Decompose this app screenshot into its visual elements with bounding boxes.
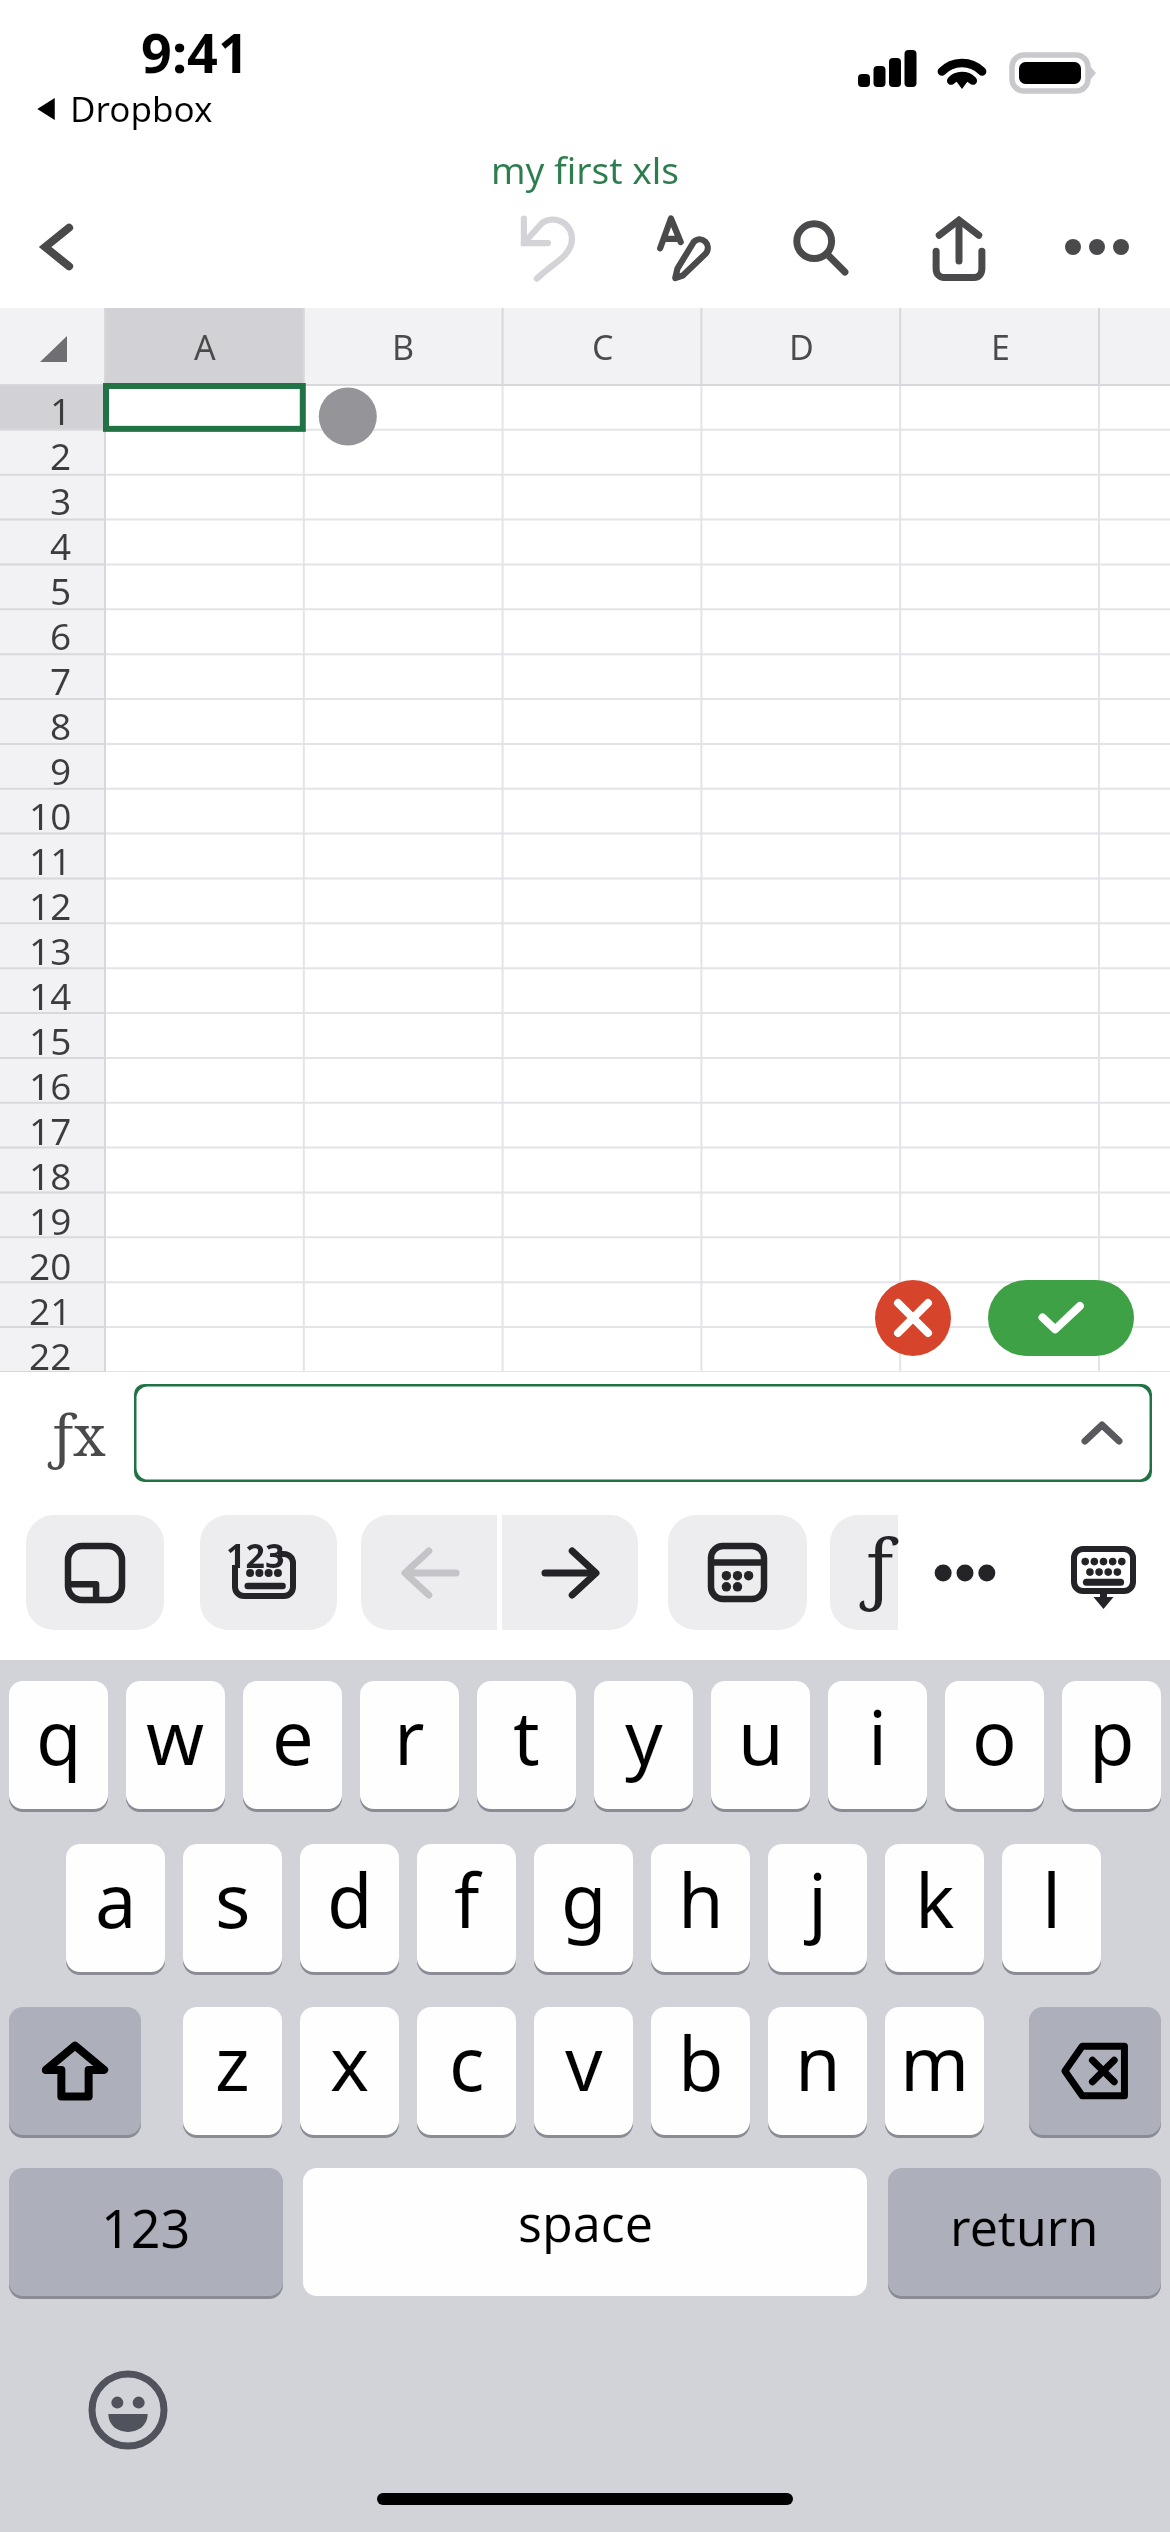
button[interactable]: E (901, 308, 1100, 385)
staticText: 9 (50, 745, 72, 790)
button[interactable]: 7 (0, 655, 105, 700)
button[interactable]: 3 (0, 475, 105, 520)
staticText: f (454, 1849, 480, 1950)
button[interactable]: Back (19, 207, 99, 287)
button[interactable] (134, 1384, 1152, 1482)
button[interactable]: a (66, 1844, 165, 1972)
button[interactable]: l (1002, 1844, 1101, 1972)
button[interactable]: 19 (0, 1195, 105, 1240)
button[interactable]: q (9, 1681, 108, 1809)
button[interactable]: 10 (0, 790, 105, 835)
button[interactable]: m (885, 2007, 984, 2135)
button[interactable]: 17 (0, 1105, 105, 1150)
button[interactable]: Numbers (9, 2168, 283, 2296)
staticText: o (972, 1686, 1017, 1787)
button[interactable]: n (768, 2007, 867, 2135)
button[interactable]: Previous cell (361, 1515, 499, 1630)
staticText: 19 (29, 1195, 72, 1240)
button[interactable]: 13 (0, 925, 105, 970)
staticText: n (795, 2012, 841, 2113)
button[interactable]: c (417, 2007, 516, 2135)
button[interactable]: f (417, 1844, 516, 1972)
button[interactable]: 21 (0, 1285, 105, 1330)
button[interactable]: Functions (830, 1515, 898, 1630)
button[interactable]: space (303, 2168, 867, 2296)
button[interactable]: 18 (0, 1150, 105, 1195)
button[interactable]: Cancel (875, 1280, 951, 1356)
button[interactable]: D (702, 308, 901, 385)
staticText: 13 (29, 925, 72, 970)
button[interactable]: Dropbox (36, 85, 213, 133)
staticText: 17 (29, 1105, 72, 1150)
button[interactable]: Numeric keyboard (200, 1515, 337, 1630)
button[interactable]: Edit (640, 202, 730, 292)
staticText: x (330, 2012, 370, 2113)
button[interactable]: C (503, 308, 702, 385)
button[interactable]: Return (888, 2168, 1161, 2296)
button[interactable]: j (768, 1844, 867, 1972)
staticText: 10 (29, 790, 72, 835)
button[interactable]: Share (914, 202, 1004, 292)
button[interactable]: 20 (0, 1240, 105, 1285)
button[interactable]: h (651, 1844, 750, 1972)
staticText: 15 (29, 1015, 72, 1060)
button[interactable]: 1 (0, 385, 105, 430)
button[interactable]: Backspace (1029, 2007, 1161, 2135)
button[interactable]: Hide keyboard (1046, 1515, 1160, 1630)
button[interactable]: More options (1052, 202, 1142, 292)
button[interactable]: d (300, 1844, 399, 1972)
button[interactable]: 15 (0, 1015, 105, 1060)
button[interactable]: t (477, 1681, 576, 1809)
staticText: 2 (50, 430, 72, 475)
button[interactable]: e (243, 1681, 342, 1809)
button[interactable]: u (711, 1681, 810, 1809)
button[interactable]: v (534, 2007, 633, 2135)
staticText: k (915, 1849, 955, 1950)
staticText: C (592, 324, 614, 370)
button[interactable]: Accept (988, 1280, 1134, 1356)
button[interactable]: 11 (0, 835, 105, 880)
button[interactable]: Sheets (26, 1515, 164, 1630)
staticText: my first xls (0, 144, 1170, 194)
staticText: j (808, 1849, 828, 1950)
button[interactable]: Undo (503, 202, 593, 292)
button[interactable]: More (910, 1515, 1020, 1630)
button[interactable]: Next cell (502, 1515, 638, 1630)
button[interactable]: 9 (0, 745, 105, 790)
button[interactable]: Shift (9, 2007, 141, 2135)
staticText: m (900, 2012, 970, 2113)
button[interactable]: 6 (0, 610, 105, 655)
button[interactable]: 14 (0, 970, 105, 1015)
staticText: 8 (50, 700, 72, 745)
button[interactable]: 8 (0, 700, 105, 745)
button[interactable]: A (105, 308, 304, 385)
staticText: 4 (50, 520, 72, 565)
button[interactable]: Table (668, 1515, 807, 1630)
staticText: 123 (101, 2192, 191, 2263)
button[interactable]: Emoji (86, 2368, 170, 2452)
staticText: 22 (29, 1330, 72, 1375)
button[interactable]: 5 (0, 565, 105, 610)
button[interactable]: 4 (0, 520, 105, 565)
button[interactable]: Search (775, 202, 865, 292)
button[interactable]: x (300, 2007, 399, 2135)
button[interactable]: B (304, 308, 503, 385)
button[interactable]: 16 (0, 1060, 105, 1105)
button[interactable]: p (1062, 1681, 1161, 1809)
button[interactable]: i (828, 1681, 927, 1809)
button[interactable]: 2 (0, 430, 105, 475)
button[interactable]: b (651, 2007, 750, 2135)
button[interactable]: s (183, 1844, 282, 1972)
button[interactable]: k (885, 1844, 984, 1972)
button[interactable]: y (594, 1681, 693, 1809)
staticText: l (1042, 1849, 1062, 1950)
button[interactable]: 22 (0, 1330, 105, 1375)
button[interactable]: 12 (0, 880, 105, 925)
button[interactable]: o (945, 1681, 1044, 1809)
button[interactable]: g (534, 1844, 633, 1972)
button[interactable]: w (126, 1681, 225, 1809)
staticText: d (327, 1849, 373, 1950)
staticText: g (561, 1849, 607, 1950)
button[interactable]: r (360, 1681, 459, 1809)
button[interactable]: z (183, 2007, 282, 2135)
